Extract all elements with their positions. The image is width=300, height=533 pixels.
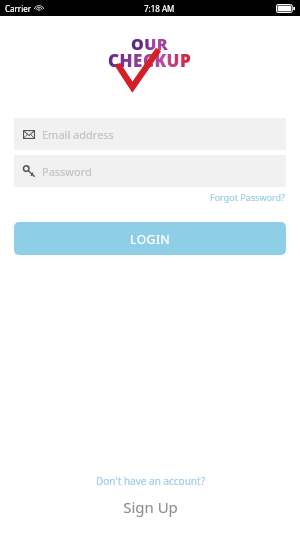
button[interactable]: Forgot Password?: [209, 190, 286, 204]
button[interactable]: Don't have an account?: [86, 472, 215, 490]
staticText: Don't have an account?: [96, 474, 205, 488]
staticText: Forgot Password?: [210, 191, 285, 203]
staticText: Carrier: [5, 3, 32, 14]
staticText: CHECKUP: [108, 49, 192, 72]
staticText: Email address: [42, 127, 114, 142]
staticText: Password: [42, 164, 92, 179]
staticText: 7:18 AM: [144, 3, 175, 14]
staticText: Sign Up: [123, 497, 178, 517]
staticText: LOGIN: [130, 231, 171, 247]
button[interactable]: Password: [14, 155, 286, 187]
button[interactable]: Email address: [14, 118, 286, 150]
staticText: OUR: [131, 33, 169, 55]
button[interactable]: LOGIN: [14, 222, 286, 255]
button[interactable]: Sign Up: [111, 495, 190, 519]
